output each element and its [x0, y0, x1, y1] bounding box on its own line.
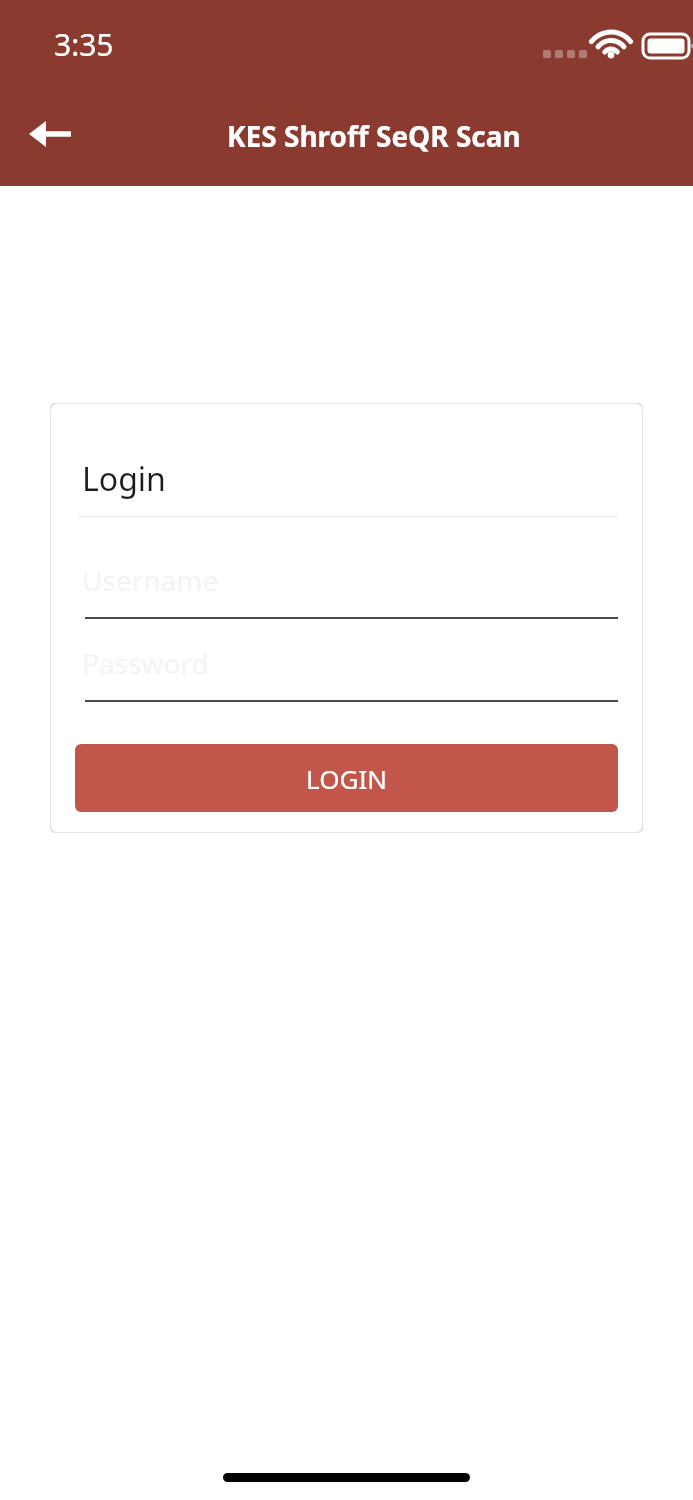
staticText: KES Shroff SeQR Scan: [227, 117, 521, 155]
button[interactable]: Back: [6, 102, 94, 166]
button[interactable]: LOGIN: [75, 744, 618, 812]
staticText: Username: [82, 561, 219, 599]
staticText: Password: [82, 644, 209, 682]
staticText: Login: [82, 457, 166, 501]
staticText: 3:35: [54, 24, 114, 65]
staticText: LOGIN: [306, 761, 387, 796]
button[interactable]: Password: [78, 626, 618, 706]
button[interactable]: Username: [78, 543, 618, 623]
